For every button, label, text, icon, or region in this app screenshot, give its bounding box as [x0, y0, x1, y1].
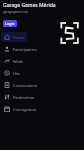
button[interactable]: Participantes: [1, 44, 84, 54]
staticText: Wods: [13, 59, 24, 64]
staticText: Convocatoria: [13, 83, 38, 88]
button[interactable]: Parámetros: [1, 92, 84, 102]
staticText: Garage Games Mérida: [3, 2, 56, 9]
staticText: Hits: [13, 71, 21, 76]
button[interactable]: Cronograma: [1, 104, 84, 114]
staticText: garagegames.site: [3, 10, 29, 14]
staticText: Cronograma: [13, 107, 37, 112]
button[interactable]: Hits: [1, 68, 84, 78]
staticText: Parámetros: [13, 95, 35, 100]
staticText: Participantes: [13, 47, 37, 52]
staticText: Login: [5, 21, 15, 26]
button[interactable]: Convocatoria: [1, 80, 84, 90]
staticText: Home: [13, 35, 25, 40]
button[interactable]: Wods: [1, 56, 84, 66]
button[interactable]: Login: [3, 20, 17, 27]
button[interactable]: Home: [1, 32, 84, 42]
